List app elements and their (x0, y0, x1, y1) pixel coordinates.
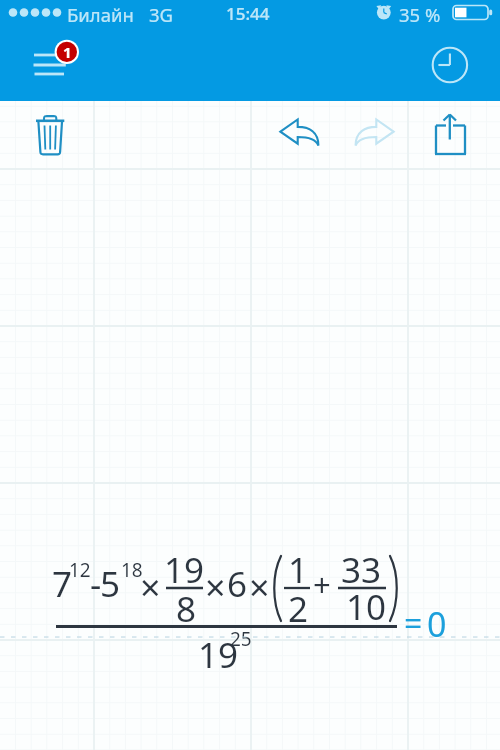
button[interactable]: Share (430, 109, 472, 165)
staticText: 18 (121, 557, 143, 583)
staticText: × (140, 563, 161, 612)
staticText: - (90, 560, 102, 608)
staticText: 0 (427, 601, 447, 647)
staticText: + (313, 563, 331, 605)
staticText: 2 (288, 585, 309, 633)
staticText: 7 (52, 560, 73, 608)
staticText: 15:44 (226, 2, 270, 25)
staticText: 35 % (399, 2, 441, 27)
button[interactable]: Undo (278, 114, 322, 158)
button[interactable]: Delete (30, 110, 70, 160)
button[interactable]: Redo (352, 114, 396, 158)
staticText: 33 (341, 546, 382, 594)
staticText: 1 (63, 42, 72, 62)
staticText: 12 (69, 557, 91, 583)
staticText: 8 (176, 585, 197, 633)
staticText: 19 (164, 546, 205, 594)
staticText: = (404, 601, 423, 645)
staticText: 19 (198, 631, 239, 679)
staticText: Билайн (67, 2, 134, 27)
staticText: 10 (346, 583, 387, 631)
staticText: 1 (288, 546, 309, 594)
staticText: 6 (227, 560, 248, 608)
staticText: × (205, 563, 226, 612)
staticText: 5 (100, 560, 121, 608)
staticText: × (249, 563, 270, 612)
staticText: 25 (230, 626, 252, 652)
button[interactable]: Menu (22, 37, 84, 93)
staticText: 3G (149, 2, 174, 27)
button[interactable]: History (426, 41, 474, 89)
